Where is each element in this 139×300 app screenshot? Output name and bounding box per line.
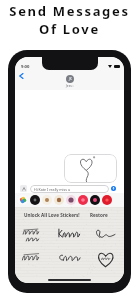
button[interactable]: Sticker <box>88 224 124 247</box>
staticText: Hi Kate I really miss u <box>34 187 71 192</box>
staticText: Of Love <box>39 20 100 38</box>
button[interactable]: App <box>54 195 64 205</box>
staticText: 9:00 <box>21 64 30 70</box>
button[interactable]: Sticker <box>52 247 88 271</box>
button[interactable]: Send <box>111 186 116 191</box>
button[interactable]: App <box>18 195 28 205</box>
button[interactable]: Hi Kate I really miss u <box>30 185 109 193</box>
staticText: JK <box>69 77 72 81</box>
button[interactable]: App <box>66 195 76 205</box>
button[interactable]: Sticker <box>15 247 52 271</box>
button[interactable]: App <box>78 195 88 205</box>
button[interactable]: App Store <box>20 185 27 192</box>
button[interactable]: App <box>102 195 112 205</box>
button[interactable]: JK <box>66 75 74 88</box>
button[interactable]: Sticker <box>88 247 124 271</box>
button[interactable]: Back <box>17 72 25 80</box>
button[interactable]: Sticker <box>15 224 52 247</box>
button[interactable]: Restore <box>90 212 108 218</box>
button[interactable]: App <box>90 195 100 205</box>
button[interactable] <box>64 154 117 183</box>
button[interactable]: Sticker <box>52 224 88 247</box>
button[interactable]: Unlock All Love Stickers! <box>24 212 80 218</box>
button[interactable]: App <box>42 195 52 205</box>
staticText: Jess › <box>66 84 74 88</box>
button[interactable]: App <box>30 195 40 205</box>
staticText: Send Messages <box>9 2 130 20</box>
